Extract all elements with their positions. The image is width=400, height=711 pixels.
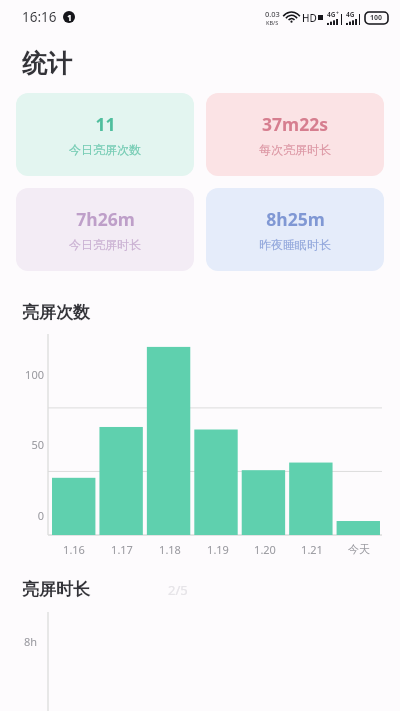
staticText: 1.19 xyxy=(207,542,229,557)
staticText: 今日亮屏次数 xyxy=(69,142,141,157)
staticText: 每次亮屏时长 xyxy=(259,142,331,157)
button[interactable]: 11 xyxy=(16,93,194,176)
staticText: 亮屏次数 xyxy=(22,302,90,323)
staticText: 0.03 xyxy=(265,9,280,19)
button[interactable]: 37m22s xyxy=(206,93,384,176)
staticText: 8h25m xyxy=(266,207,325,231)
staticText: 37m22s xyxy=(262,112,328,136)
staticText: 0 xyxy=(37,508,44,523)
staticText: 100 xyxy=(25,367,44,382)
staticText: 50 xyxy=(31,437,44,452)
staticText: 4G xyxy=(327,10,336,19)
staticText: 1.20 xyxy=(254,542,276,557)
staticText: 1.21 xyxy=(301,542,323,557)
staticText: 2/5 xyxy=(168,581,188,599)
staticText: HD xyxy=(302,11,317,25)
staticText: 100 xyxy=(370,13,383,23)
staticText: 16:16 xyxy=(22,8,57,26)
staticText: 11 xyxy=(95,112,116,136)
staticText: 昨夜睡眠时长 xyxy=(259,237,331,252)
staticText: KB/S xyxy=(266,19,279,26)
staticText: 统计 xyxy=(22,48,72,79)
staticText: 1.18 xyxy=(159,542,181,557)
button[interactable]: 7h26m xyxy=(16,188,194,271)
staticText: 8h xyxy=(24,634,38,649)
staticText: 7h26m xyxy=(76,207,135,231)
staticText: 亮屏时长 xyxy=(22,579,90,600)
staticText: 1.17 xyxy=(111,542,133,557)
staticText: 今日亮屏时长 xyxy=(69,237,141,252)
staticText: 1.16 xyxy=(63,542,85,557)
staticText: + xyxy=(336,10,339,17)
staticText: 今天 xyxy=(348,542,370,556)
button[interactable]: 8h25m xyxy=(206,188,384,271)
staticText: 4G xyxy=(346,10,355,19)
staticText: 1 xyxy=(67,12,72,23)
